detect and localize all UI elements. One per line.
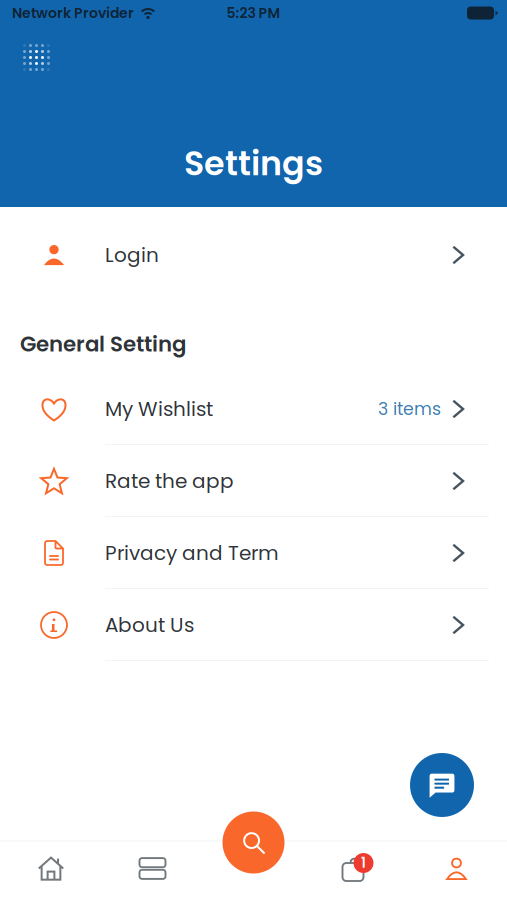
button[interactable]: Categories [102, 841, 203, 899]
button[interactable]: Cart [304, 841, 406, 899]
button[interactable]: Login [0, 219, 507, 291]
button[interactable]: Rate the app [0, 445, 507, 517]
staticText: General Setting [20, 329, 186, 359]
staticText: 1 [361, 854, 366, 872]
staticText: Network Provider [12, 3, 134, 23]
button[interactable]: Privacy and Term [0, 517, 507, 589]
staticText: 3 items [378, 397, 441, 421]
staticText: Settings [184, 140, 323, 187]
button[interactable]: Search [222, 811, 284, 873]
staticText: 5:23 PM [226, 3, 280, 23]
button[interactable]: Chat [410, 753, 474, 817]
staticText: Rate the app [105, 467, 234, 495]
button[interactable]: Menu [13, 34, 60, 81]
staticText: Login [105, 241, 159, 269]
button[interactable]: My Wishlist [0, 373, 507, 445]
button[interactable]: Home [0, 841, 102, 899]
staticText: About Us [105, 611, 194, 639]
button[interactable]: About Us [0, 589, 507, 661]
staticText: Privacy and Term [105, 539, 279, 567]
button[interactable]: Account [406, 841, 507, 899]
staticText: My Wishlist [105, 395, 213, 423]
